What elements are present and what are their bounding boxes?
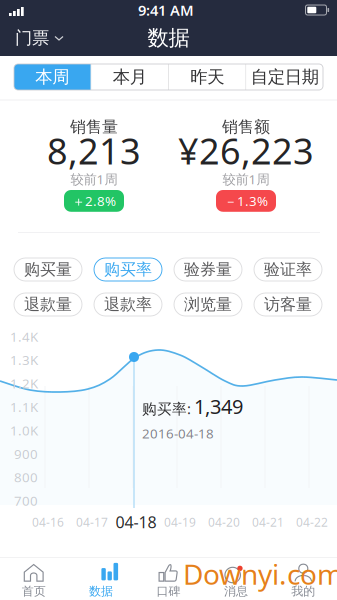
staticText: 浏览量 (184, 295, 232, 314)
staticText: 数据 (89, 584, 113, 599)
staticText: 访客量 (264, 295, 312, 314)
staticText: 04-18 (115, 511, 156, 533)
staticText: 验证率 (264, 260, 312, 279)
staticText: 购买量 (24, 260, 72, 279)
staticText: 购买率 (104, 260, 152, 279)
staticText: 700 (14, 492, 38, 509)
button[interactable]: 口碑 (135, 558, 202, 600)
staticText: 04-20 (208, 514, 240, 530)
staticText: 1.2K (10, 374, 38, 392)
staticText: 1.4K (10, 328, 38, 345)
button[interactable]: 验证率 (254, 258, 322, 281)
staticText: －1.3% (224, 192, 268, 210)
staticText: 800 (14, 468, 38, 486)
button[interactable]: 购买率 (94, 258, 162, 281)
staticText: 首页 (22, 584, 46, 599)
button[interactable]: 昨天 (169, 64, 246, 90)
staticText: 较前1周 (70, 170, 117, 188)
button[interactable]: 退款量 (14, 293, 82, 316)
staticText: ＋2.8% (72, 192, 116, 210)
staticText: 04-22 (296, 514, 328, 530)
staticText: 退款量 (24, 295, 72, 314)
staticText: 昨天 (190, 66, 224, 88)
button[interactable]: 数据 (67, 558, 135, 600)
staticText: 退款率 (104, 295, 152, 314)
staticText: 数据 (147, 25, 189, 51)
staticText: 口碑 (156, 584, 180, 599)
button[interactable]: 验券量 (174, 258, 242, 281)
staticText: 9:41 AM (138, 0, 194, 20)
staticText: 销售额 (222, 117, 270, 137)
button[interactable]: 退款率 (94, 293, 162, 316)
button[interactable]: 浏览量 (174, 293, 242, 316)
button[interactable]: 购买量 (14, 258, 82, 281)
button[interactable]: 我的 (270, 558, 337, 600)
staticText: 1.0K (10, 421, 38, 439)
staticText: 04-17 (76, 514, 108, 530)
button[interactable]: 自定日期 (246, 64, 323, 90)
staticText: 购买率: (142, 399, 191, 418)
staticText: Downyi.com (183, 555, 337, 593)
button[interactable]: 门票 (0, 20, 74, 56)
staticText: 2016-04-18 (142, 425, 214, 442)
button[interactable]: 本周 (14, 64, 91, 90)
button[interactable]: 访客量 (254, 293, 322, 316)
staticText: 门票 (15, 27, 49, 49)
staticText: ¥26,223 (178, 127, 314, 174)
staticText: 04-21 (252, 514, 284, 530)
staticText: 04-16 (32, 514, 64, 530)
staticText: 8,213 (47, 127, 141, 174)
staticText: 04-19 (164, 514, 196, 530)
button[interactable]: 消息 (202, 558, 270, 600)
staticText: 消息 (224, 584, 248, 599)
staticText: 自定日期 (251, 66, 319, 88)
staticText: 我的 (291, 584, 315, 599)
staticText: 较前1周 (222, 170, 269, 188)
staticText: 本月 (113, 66, 147, 88)
staticText: 1,349 (194, 393, 243, 420)
staticText: 1.1K (10, 398, 38, 416)
staticText: 销售量 (70, 117, 118, 137)
staticText: 900 (14, 445, 38, 463)
staticText: 本周 (35, 66, 69, 88)
button[interactable]: 本月 (91, 64, 168, 90)
staticText: 验券量 (184, 260, 232, 279)
button[interactable]: 首页 (0, 558, 67, 600)
staticText: 1.3K (10, 351, 38, 369)
